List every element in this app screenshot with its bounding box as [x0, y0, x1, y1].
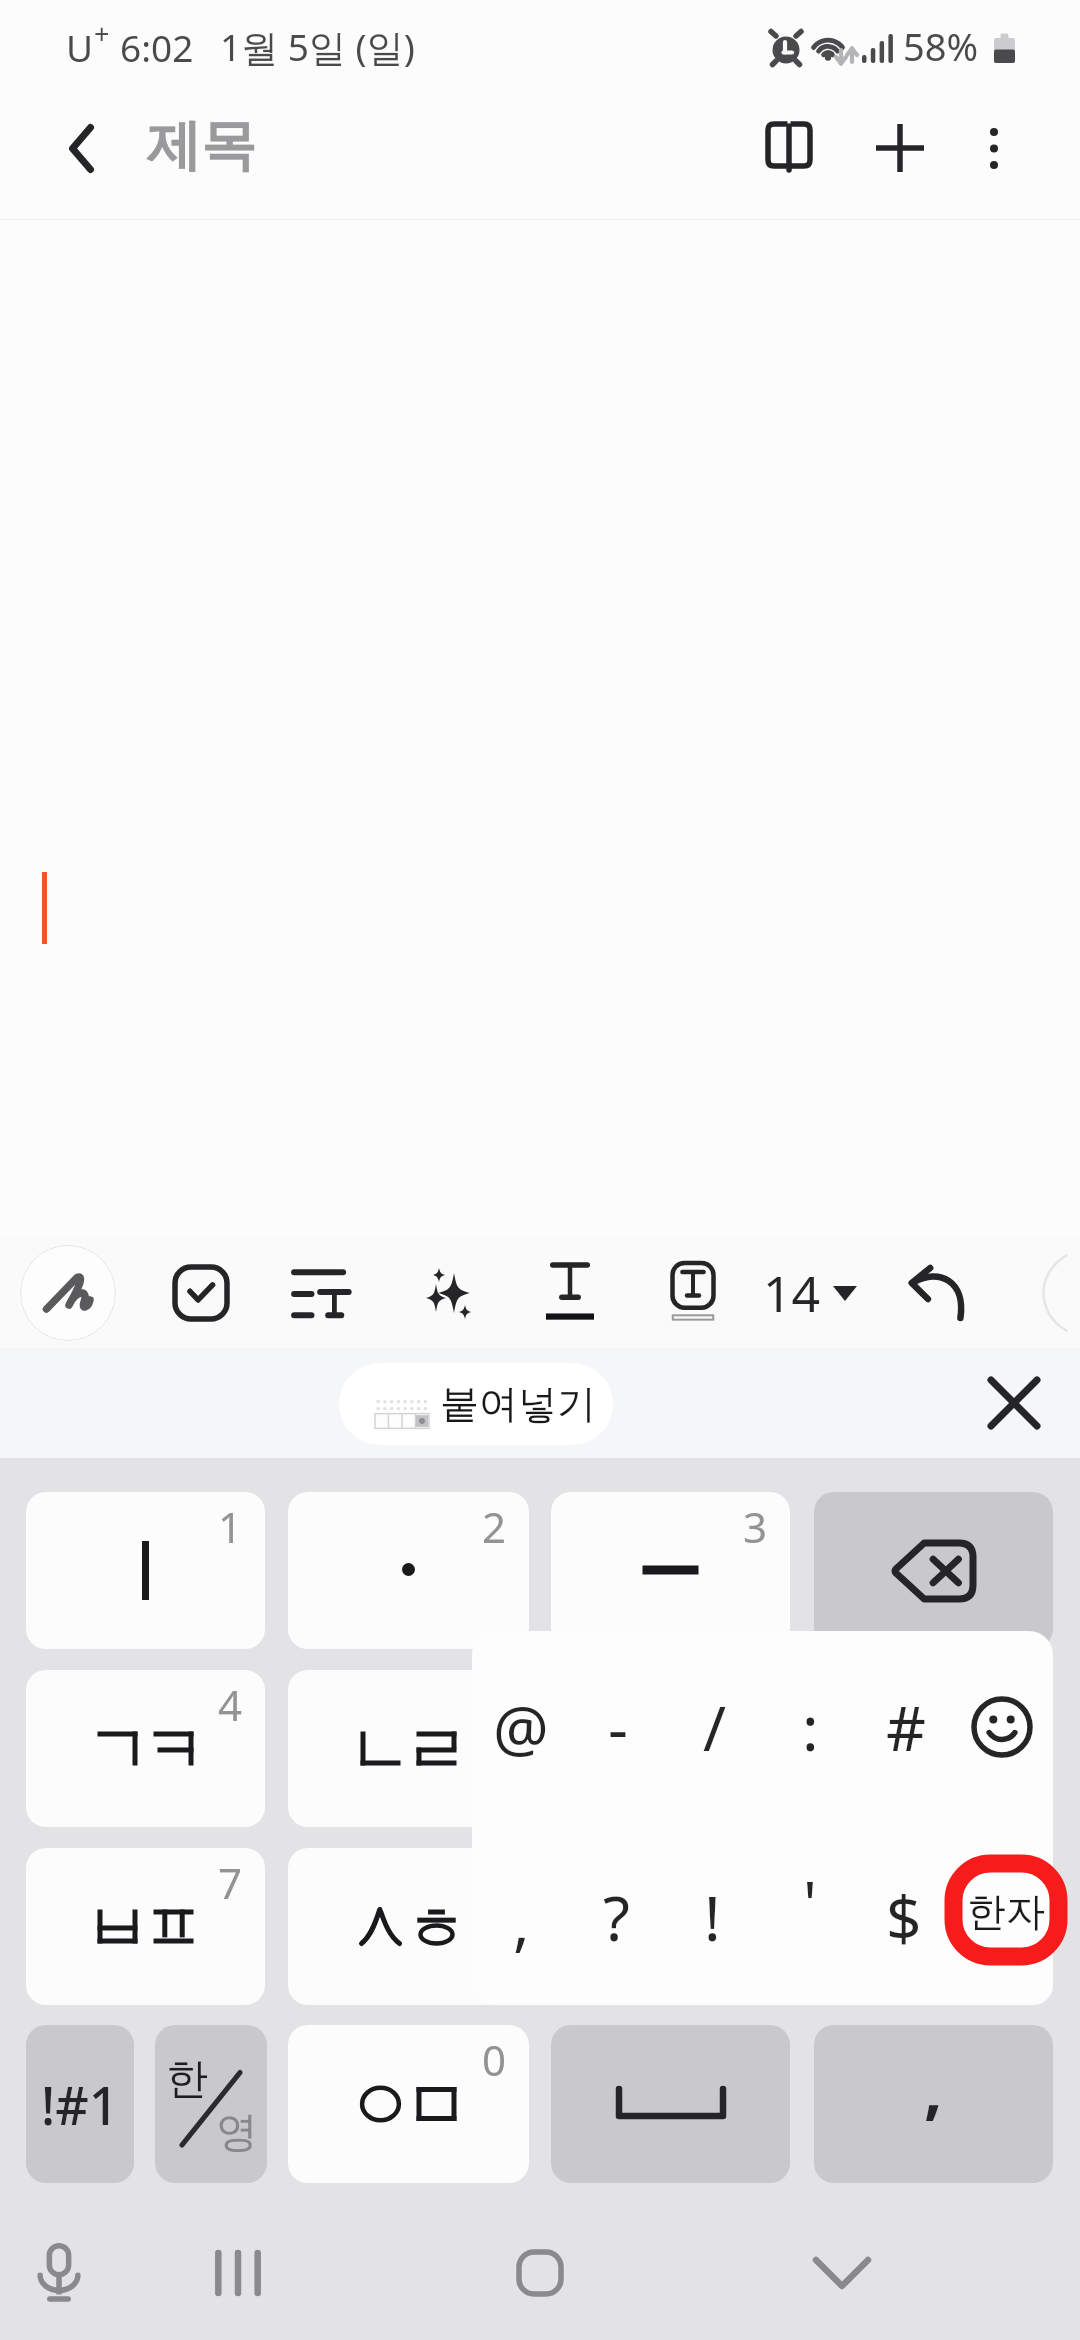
staticText: 영: [216, 2106, 258, 2159]
staticText: 0: [482, 2031, 507, 2088]
button[interactable]: Close: [972, 1361, 1056, 1445]
staticText: 한: [166, 2053, 208, 2106]
staticText: ,: [924, 2045, 943, 2132]
button[interactable]: Pen: [20, 1245, 116, 1341]
staticText: ': [803, 1860, 817, 1944]
button[interactable]: Reading mode: [734, 92, 844, 202]
button[interactable]: ㄱㅋ: [26, 1670, 265, 1827]
staticText: 2: [482, 1498, 507, 1555]
button[interactable]: Back: [33, 100, 129, 196]
button[interactable]: Enter: [814, 1848, 1053, 2005]
button[interactable]: [636, 1238, 750, 1348]
button[interactable]: ㅇㅁ: [288, 2025, 529, 2183]
staticText: -: [608, 1685, 628, 1769]
button[interactable]: Symbols: [26, 2025, 134, 2183]
button[interactable]: @: [479, 1685, 563, 1769]
button[interactable]: 한자: [944, 1854, 1068, 1966]
button[interactable]: ': [768, 1860, 852, 1944]
staticText: #: [886, 1685, 927, 1769]
button[interactable]: !: [670, 1875, 754, 1959]
staticText: 한자: [967, 1887, 1045, 1936]
button[interactable]: Hide keyboard: [774, 2205, 910, 2340]
staticText: 5: [482, 1676, 507, 1733]
staticText: 14: [763, 1259, 821, 1327]
staticText: 제목: [146, 111, 256, 180]
staticText: 1: [218, 1498, 243, 1555]
button[interactable]: Home: [472, 2205, 608, 2340]
button[interactable]: #: [864, 1685, 948, 1769]
button[interactable]: ㅈㅊ: [551, 1848, 790, 2005]
button[interactable]: [265, 1238, 379, 1348]
button[interactable]: /: [673, 1685, 757, 1769]
button[interactable]: ㅣ: [26, 1492, 265, 1649]
button[interactable]: ·: [288, 1492, 529, 1649]
button[interactable]: 14: [745, 1238, 875, 1348]
button[interactable]: Space: [551, 2025, 790, 2183]
button[interactable]: Backspace: [814, 1492, 1053, 1649]
staticText: 4: [218, 1676, 243, 1733]
staticText: 58%: [903, 20, 979, 72]
button[interactable]: ㄴㄹ: [288, 1670, 529, 1827]
button[interactable]: Add: [845, 93, 955, 203]
button[interactable]: More options: [944, 98, 1044, 198]
staticText: :: [802, 1685, 819, 1769]
button[interactable]: [144, 1238, 258, 1348]
staticText: !: [704, 1875, 721, 1959]
button[interactable]: [392, 1238, 506, 1348]
button[interactable]: [881, 1238, 995, 1348]
button[interactable]: $: [862, 1875, 946, 1959]
button[interactable]: Language: [155, 2025, 267, 2183]
button[interactable]: Option: [814, 1670, 1053, 1827]
staticText: 붙여넣기: [440, 1379, 596, 1428]
button[interactable]: ㅂㅍ: [26, 1848, 265, 2005]
button[interactable]: ㄷㅌ: [551, 1670, 790, 1827]
button[interactable]: Comma: [814, 2025, 1053, 2183]
staticText: $: [886, 1875, 922, 1959]
button[interactable]: 붙여넣기: [339, 1363, 613, 1445]
button[interactable]: ,: [479, 1879, 563, 1963]
button[interactable]: -: [576, 1685, 660, 1769]
button[interactable]: :: [768, 1685, 852, 1769]
staticText: !#1: [41, 2069, 119, 2140]
staticText: +: [94, 15, 110, 52]
button[interactable]: Recents: [170, 2205, 306, 2340]
button[interactable]: [513, 1238, 627, 1348]
button[interactable]: Voice input: [0, 2205, 127, 2340]
staticText: @: [493, 1685, 549, 1769]
button[interactable]: ㅅㅎ: [288, 1848, 529, 2005]
button[interactable]: Emoji: [960, 1685, 1044, 1769]
staticText: 1월 5일 (일): [220, 21, 415, 72]
staticText: /: [703, 1685, 727, 1769]
staticText: ,: [513, 1879, 530, 1963]
button[interactable]: ?: [574, 1875, 658, 1959]
staticText: 7: [218, 1854, 243, 1911]
staticText: U: [66, 22, 94, 72]
staticText: ?: [603, 1875, 630, 1959]
staticText: 3: [743, 1498, 768, 1555]
staticText: 6:02: [120, 22, 194, 72]
button[interactable]: ㅡ: [551, 1492, 790, 1649]
